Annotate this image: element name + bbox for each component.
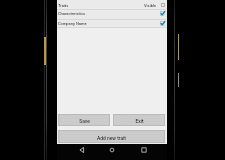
staticText: Save: [79, 118, 90, 124]
staticText: Exit: [135, 118, 144, 124]
button[interactable]: Toggle all visible: [161, 3, 165, 7]
staticText: Company Name: [58, 21, 87, 26]
button[interactable]: Save: [58, 114, 110, 126]
staticText: Characteristics: [58, 11, 86, 16]
button[interactable]: Visible: [160, 21, 165, 26]
button[interactable]: Characteristics: [58, 9, 165, 18]
button[interactable]: Exit: [113, 114, 165, 126]
button[interactable]: Back: [78, 146, 86, 154]
staticText: Traits: [58, 3, 69, 8]
staticText: Visible: [144, 3, 157, 8]
button[interactable]: Recent apps: [140, 146, 148, 154]
staticText: Add new trait: [97, 135, 126, 141]
button[interactable]: Home: [108, 146, 116, 154]
button[interactable]: Add new trait: [58, 130, 165, 143]
button[interactable]: Visible: [160, 11, 165, 16]
button[interactable]: Company Name: [58, 19, 165, 28]
